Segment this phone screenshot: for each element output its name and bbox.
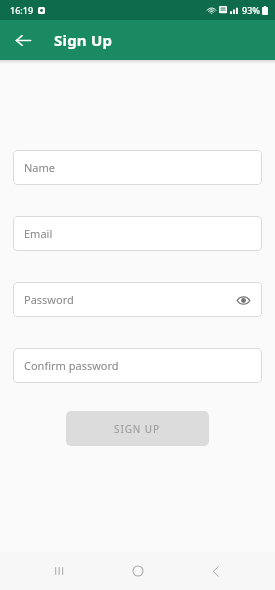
- staticText: Name: [24, 160, 56, 175]
- staticText: Password: [24, 292, 74, 307]
- staticText: Email: [24, 226, 53, 241]
- button[interactable]: Email: [13, 216, 262, 251]
- staticText: 16:19: [10, 4, 34, 16]
- button[interactable]: Toggle password visibility: [230, 287, 256, 313]
- staticText: 93%: [242, 4, 260, 16]
- button[interactable]: Confirm password: [13, 348, 262, 383]
- button[interactable]: Back: [6, 23, 40, 57]
- staticText: Confirm password: [24, 358, 119, 373]
- button[interactable]: Password: [13, 282, 262, 317]
- staticText: Sign Up: [54, 30, 113, 50]
- button[interactable]: Back: [196, 552, 236, 590]
- staticText: SIGN UP: [114, 422, 161, 436]
- button[interactable]: Name: [13, 150, 262, 185]
- button[interactable]: Recent apps: [39, 552, 79, 590]
- button[interactable]: SIGN UP: [66, 411, 209, 446]
- button[interactable]: Home: [118, 552, 158, 590]
